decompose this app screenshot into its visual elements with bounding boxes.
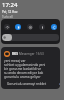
staticText: 16:53 — [36, 52, 44, 56]
staticText: sohbet uygulamasinda yeni — [4, 63, 46, 67]
staticText: 17:24 — [2, 1, 18, 9]
button[interactable]: Flashlight — [36, 21, 48, 32]
button[interactable]: Do not disturb — [24, 21, 36, 32]
button[interactable]: Wi-Fi — [1, 21, 12, 32]
staticText: RKS — [12, 52, 18, 56]
staticText: Turkcell — [2, 15, 13, 19]
staticText: Pzt, 12 Haz — [2, 10, 18, 14]
button[interactable]: Bluetooth — [12, 21, 24, 32]
button[interactable]: Auto rotate — [48, 21, 60, 32]
button[interactable]: RKS — [1, 47, 60, 89]
button[interactable]: Reply — [59, 83, 60, 85]
button[interactable]: Goruntulu aramayi reddet — [7, 82, 47, 86]
button[interactable]: Brightness — [2, 34, 59, 41]
staticText: su anda devam ediyor bak — [4, 71, 44, 75]
staticText: Messenger — [19, 52, 35, 56]
staticText: bir gorusme baslatildi ve — [4, 67, 41, 71]
staticText: goruntulu arama geliyor — [4, 75, 41, 79]
staticText: yeni mesaj var — [4, 59, 26, 63]
